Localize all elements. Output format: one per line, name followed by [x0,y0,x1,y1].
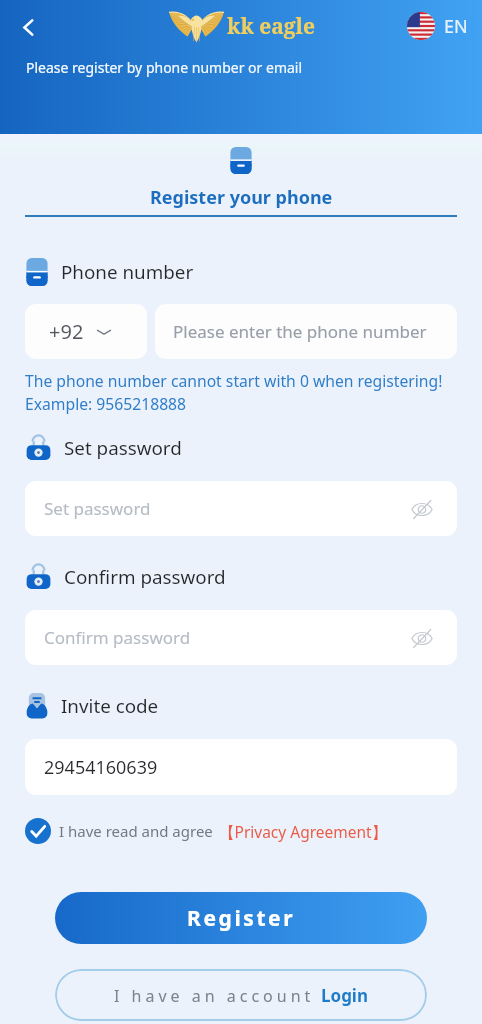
staticText: Please enter the phone number [173,320,427,343]
staticText: +92 [49,318,84,345]
button[interactable]: 29454160639 [25,739,457,795]
button[interactable]: EN [407,12,468,40]
staticText: Confirm password [64,564,226,590]
staticText: Please register by phone number or email [26,58,303,77]
staticText: Set password [64,435,182,461]
staticText: Invite code [61,693,159,719]
staticText: Phone number [61,259,194,285]
button[interactable]: I have read and agree [25,818,457,844]
button[interactable]: Confirm password [25,610,457,665]
button[interactable]: Register [55,892,427,944]
staticText: kk eagle [227,12,315,41]
staticText: 29454160639 [44,755,158,780]
staticText: The phone number cannot start with 0 whe… [25,370,443,391]
staticText: Register your phone [150,185,333,210]
staticText: Register [187,904,296,933]
staticText: Login [321,984,369,1007]
staticText: Set password [44,497,151,520]
staticText: I have read and agree [59,821,213,841]
button[interactable]: +92 [25,304,147,359]
staticText: Confirm password [44,626,191,649]
staticText: EN [444,14,468,39]
button[interactable]: Show password [409,625,435,651]
button[interactable]: Set password [25,481,457,536]
staticText: I have an account [114,985,315,1007]
staticText: Example: 9565218888 [25,393,187,414]
button[interactable]: Back [11,10,45,44]
staticText: 【Privacy Agreement】 [219,821,388,842]
button[interactable]: Please enter the phone number [155,304,457,359]
button[interactable]: I have an account [55,969,427,1021]
button[interactable]: Show password [409,496,435,522]
